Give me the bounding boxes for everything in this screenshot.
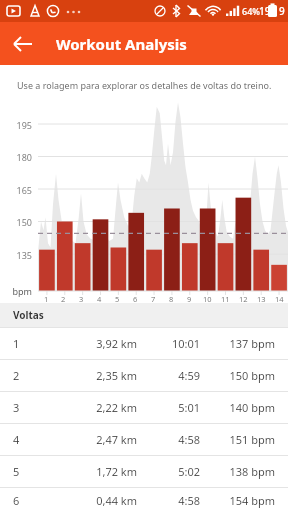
- staticText: Use a rolagem para explorar os detalhes …: [17, 79, 272, 91]
- staticText: 150: [6, 216, 32, 228]
- staticText: 5:02: [145, 464, 200, 479]
- staticText: 11: [221, 294, 230, 304]
- button[interactable]: 4: [0, 424, 288, 455]
- staticText: 10: [203, 294, 212, 304]
- staticText: 10:01: [145, 336, 200, 351]
- staticText: 3: [13, 400, 20, 415]
- staticText: 138 bpm: [205, 464, 275, 479]
- staticText: 7: [151, 294, 156, 304]
- staticText: Workout Analysis: [56, 34, 187, 54]
- staticText: 5: [13, 464, 20, 479]
- staticText: 1,72 km: [60, 464, 137, 479]
- staticText: 13: [257, 294, 266, 304]
- staticText: 8: [169, 294, 174, 304]
- staticText: 3: [79, 294, 84, 304]
- staticText: Voltas: [13, 308, 44, 322]
- staticText: 6: [133, 294, 138, 304]
- button[interactable]: 3: [0, 392, 288, 423]
- button[interactable]: 1: [0, 328, 288, 359]
- staticText: 1: [13, 336, 20, 351]
- staticText: 3,92 km: [60, 336, 137, 351]
- staticText: 4:58: [145, 493, 200, 508]
- staticText: 6: [13, 493, 20, 508]
- staticText: 195: [6, 119, 32, 131]
- staticText: 2,22 km: [60, 400, 137, 415]
- button[interactable]: 2: [0, 360, 288, 391]
- staticText: 2,35 km: [60, 368, 137, 383]
- staticText: 5:01: [145, 400, 200, 415]
- button[interactable]: Back: [7, 28, 39, 60]
- staticText: 2,47 km: [60, 432, 137, 447]
- staticText: 151 bpm: [205, 432, 275, 447]
- staticText: 140 bpm: [205, 400, 275, 415]
- staticText: 137 bpm: [205, 336, 275, 351]
- staticText: 135: [6, 249, 32, 261]
- staticText: 64%: [242, 5, 260, 17]
- staticText: 180: [6, 151, 32, 163]
- staticText: 14: [275, 294, 284, 304]
- staticText: 4:58: [145, 432, 200, 447]
- staticText: 0,44 km: [60, 493, 137, 508]
- staticText: 4: [97, 294, 102, 304]
- staticText: 19:19: [259, 4, 285, 18]
- staticText: 4:59: [145, 368, 200, 383]
- staticText: bpm: [4, 285, 32, 297]
- staticText: 2: [13, 368, 20, 383]
- button[interactable]: 5: [0, 456, 288, 487]
- staticText: 2: [61, 294, 66, 304]
- button[interactable]: 6: [0, 488, 288, 512]
- staticText: 5: [115, 294, 120, 304]
- staticText: 1: [44, 294, 49, 304]
- staticText: 9: [187, 294, 192, 304]
- staticText: 154 bpm: [205, 493, 275, 508]
- staticText: 150 bpm: [205, 368, 275, 383]
- staticText: 12: [239, 294, 248, 304]
- staticText: 165: [6, 184, 32, 196]
- staticText: 4: [13, 432, 20, 447]
